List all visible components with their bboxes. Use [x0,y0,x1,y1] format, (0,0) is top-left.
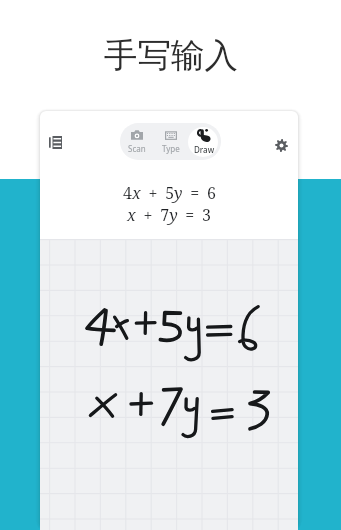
staticText: Scan [128,143,146,154]
button[interactable]: Type [154,123,188,160]
button[interactable]: Draw [188,123,221,160]
button[interactable]: History [42,129,68,155]
staticText: Draw [194,144,215,155]
staticText: 手写输入 [104,35,238,77]
staticText: 4x + 5y = 6 [123,182,216,204]
button[interactable]: Scan [120,123,154,160]
staticText: Type [162,143,180,154]
button[interactable]: Settings [268,132,294,158]
staticText: x + 7y = 3 [127,204,212,226]
